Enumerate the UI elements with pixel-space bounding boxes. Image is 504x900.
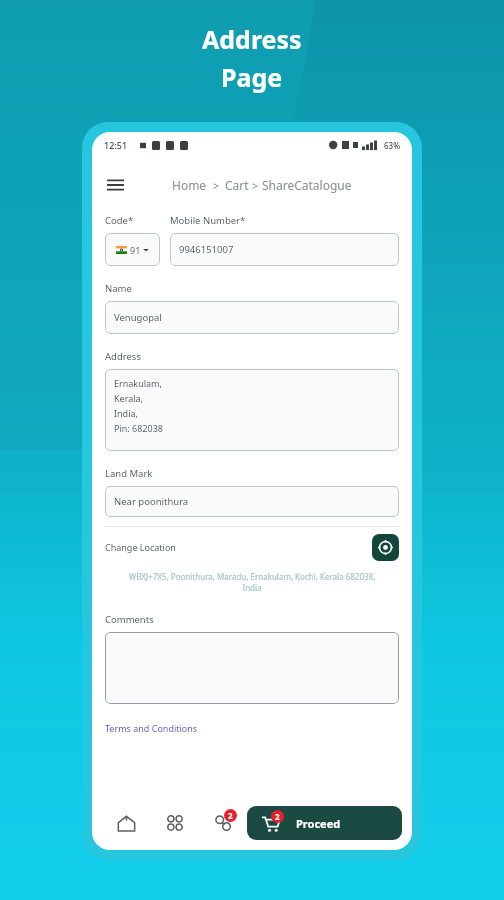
staticText: Change Location xyxy=(105,541,176,553)
staticText: Mobile Number* xyxy=(170,214,246,227)
staticText: Comments xyxy=(105,613,154,626)
staticText: Kerala, xyxy=(114,392,144,404)
staticText: ShareCatalogue xyxy=(262,177,352,193)
staticText: Address xyxy=(105,350,141,363)
staticText: Cart xyxy=(225,177,249,193)
button[interactable]: Categories xyxy=(151,799,199,847)
staticText: Pin: 682038 xyxy=(114,422,163,434)
staticText: 2 xyxy=(228,810,233,821)
button[interactable]: Near poonithura xyxy=(105,486,399,517)
button[interactable]: Cart xyxy=(225,177,249,193)
button[interactable]: 91 xyxy=(105,233,160,266)
staticText: Proceed xyxy=(296,816,341,831)
staticText: Venugopal xyxy=(114,311,162,324)
staticText: 91 xyxy=(130,244,141,256)
staticText: Code* xyxy=(105,214,134,227)
button[interactable]: Shared catalogues, 2 items xyxy=(199,799,247,847)
staticText: Address xyxy=(202,22,302,56)
button[interactable]: 9946151007 xyxy=(170,233,399,266)
button[interactable]: Home xyxy=(102,799,151,847)
staticText: > xyxy=(249,178,262,193)
button[interactable]: Ernakulam, xyxy=(105,369,399,451)
staticText: 63% xyxy=(384,140,400,151)
staticText: Terms and Conditions xyxy=(105,722,198,734)
staticText: > xyxy=(207,178,225,193)
button[interactable]: ShareCatalogue xyxy=(262,177,352,193)
staticText: Land Mark xyxy=(105,467,153,480)
staticText: 9946151007 xyxy=(179,243,234,256)
button[interactable]: Home xyxy=(172,177,207,193)
staticText: Near poonithura xyxy=(114,495,189,508)
staticText: Name xyxy=(105,282,132,295)
button[interactable]: Venugopal xyxy=(105,301,399,334)
button[interactable]: Use current location xyxy=(372,534,399,561)
staticText: India, xyxy=(114,407,138,419)
button[interactable]: Terms and Conditions xyxy=(105,722,198,734)
staticText: WBXJ+7X5, Poonithura, Maradu, Ernakulam,… xyxy=(119,571,385,593)
button[interactable] xyxy=(105,632,399,704)
staticText: Page xyxy=(221,60,283,94)
staticText: Ernakulam, xyxy=(114,377,162,389)
button[interactable]: Change Location xyxy=(105,541,372,553)
button[interactable]: 2 xyxy=(247,806,402,840)
button[interactable]: Menu xyxy=(104,174,126,196)
staticText: 2 xyxy=(275,811,280,822)
staticText: Home xyxy=(172,177,207,193)
staticText: 12:51 xyxy=(104,139,128,151)
